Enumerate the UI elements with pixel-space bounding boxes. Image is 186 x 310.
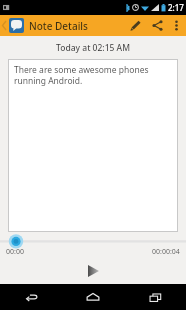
button[interactable]: Share <box>146 15 168 36</box>
staticText: There are some awesome phones running An… <box>14 64 172 86</box>
button[interactable]: More options <box>168 15 184 36</box>
button[interactable]: Edit <box>124 15 146 36</box>
staticText: 00:00:04 <box>152 247 180 257</box>
staticText: 2:17 <box>168 2 184 13</box>
staticText: Note Details <box>29 19 88 33</box>
button[interactable]: Navigate up <box>0 15 25 36</box>
button[interactable]: Play <box>81 259 105 283</box>
button[interactable]: Home <box>62 284 124 310</box>
staticText: 00:00 <box>6 247 24 257</box>
button[interactable]: Back <box>0 284 62 310</box>
button[interactable]: There are some awesome phones running An… <box>8 59 178 232</box>
button[interactable]: Recent apps <box>124 284 186 310</box>
staticText: Today at 02:15 AM <box>0 42 186 54</box>
